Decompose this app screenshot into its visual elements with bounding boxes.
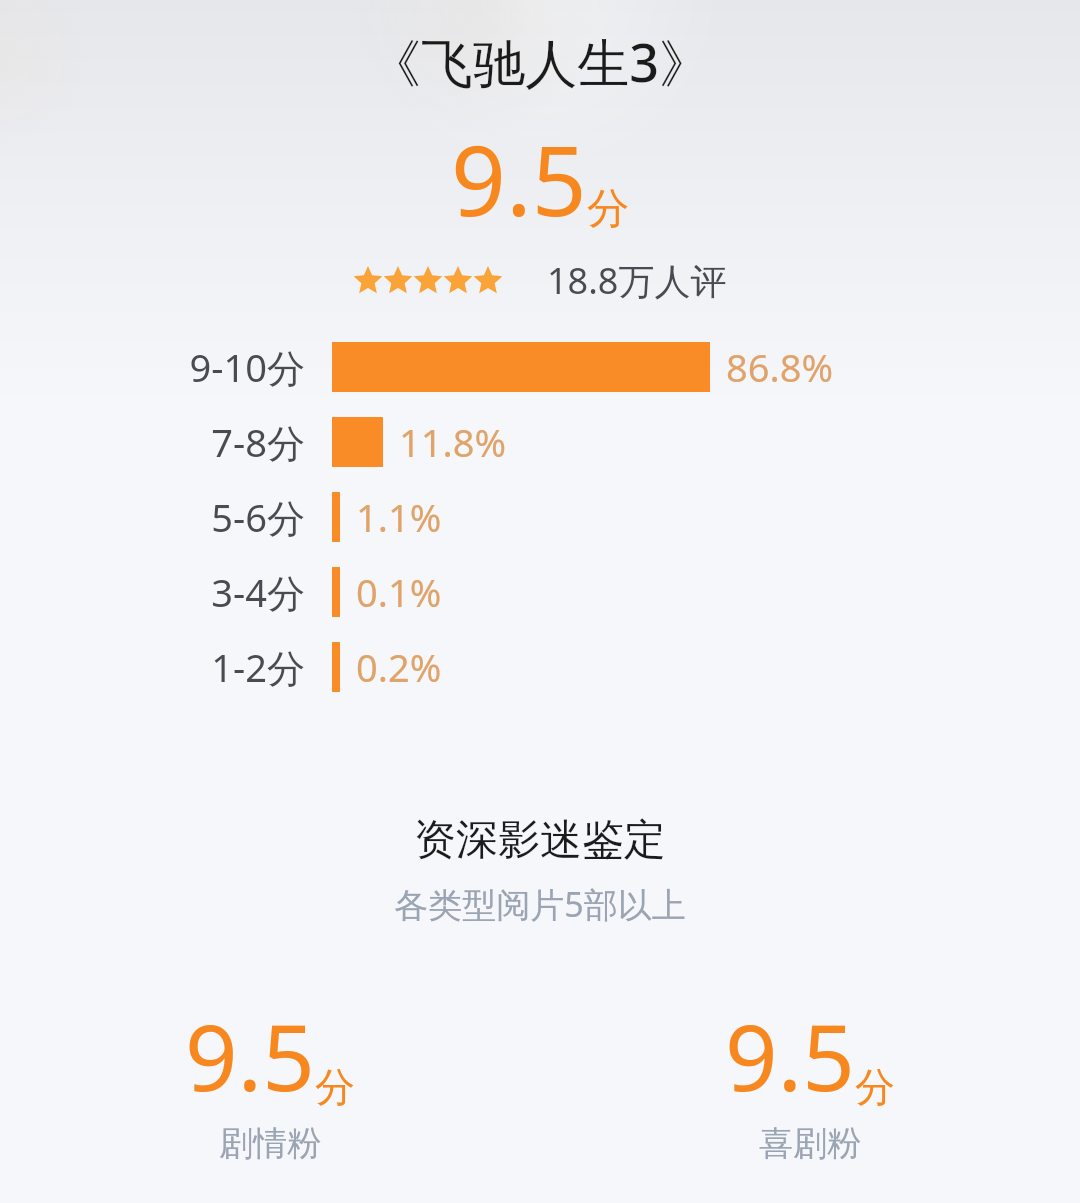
- button[interactable]: 3-4分: [0, 554, 1080, 629]
- staticText: 分: [315, 1062, 355, 1112]
- staticText: 喜剧粉: [759, 1122, 861, 1165]
- staticText: 3-4分: [211, 566, 305, 618]
- staticText: 9.5: [185, 993, 315, 1118]
- staticText: 1.1%: [356, 491, 442, 543]
- staticText: 0.1%: [356, 566, 442, 618]
- staticText: 0.2%: [356, 641, 442, 693]
- staticText: 分: [855, 1062, 895, 1112]
- button[interactable]: 1-2分: [0, 629, 1080, 704]
- staticText: 剧情粉: [219, 1122, 321, 1165]
- staticText: 18.8万人评: [547, 256, 727, 305]
- button[interactable]: 9.5: [540, 993, 1080, 1165]
- button[interactable]: 9.5: [0, 993, 540, 1165]
- staticText: 9.5: [451, 113, 587, 244]
- staticText: 各类型阅片5部以上: [0, 881, 1080, 927]
- staticText: 9-10分: [189, 341, 305, 393]
- staticText: 1-2分: [211, 641, 305, 693]
- staticText: 分: [587, 183, 629, 236]
- staticText: 资深影迷鉴定: [0, 814, 1080, 867]
- staticText: 11.8%: [399, 416, 506, 468]
- staticText: 7-8分: [211, 416, 305, 468]
- button[interactable]: 7-8分: [0, 404, 1080, 479]
- staticText: 《飞驰人生3》: [0, 26, 1080, 97]
- button[interactable]: 9-10分: [0, 329, 1080, 404]
- staticText: 9.5: [725, 993, 855, 1118]
- staticText: 86.8%: [726, 341, 833, 393]
- button[interactable]: 5-6分: [0, 479, 1080, 554]
- staticText: 5-6分: [211, 491, 305, 543]
